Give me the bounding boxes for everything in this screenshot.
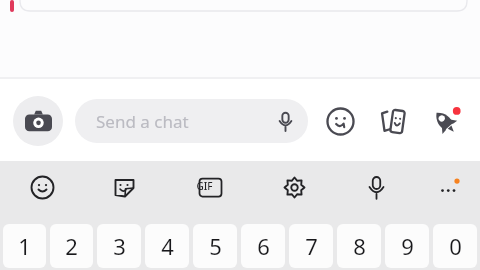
staticText: 2 [65, 231, 78, 261]
staticText: Send a chat [96, 110, 189, 133]
button[interactable]: 9 [385, 224, 429, 268]
button[interactable]: Cards [372, 100, 414, 142]
button[interactable]: 0 [433, 224, 477, 268]
button[interactable]: 8 [337, 224, 381, 268]
staticText: 0 [449, 231, 462, 261]
staticText: 7 [305, 231, 318, 261]
button[interactable]: 6 [241, 224, 285, 268]
staticText: 4 [161, 231, 174, 261]
staticText: GIF [196, 179, 213, 193]
staticText: 6 [257, 231, 270, 261]
button[interactable]: GIF [187, 164, 233, 210]
button[interactable]: Emoji [19, 164, 65, 210]
button[interactable]: Stickers [319, 100, 361, 142]
button[interactable]: 2 [50, 224, 93, 268]
staticText: 3 [113, 231, 126, 261]
button[interactable]: 5 [193, 224, 237, 268]
button[interactable]: Settings [271, 164, 317, 210]
button[interactable]: 4 [145, 224, 189, 268]
button[interactable]: Camera [13, 96, 63, 146]
staticText: 1 [18, 231, 31, 261]
button[interactable]: 3 [97, 224, 141, 268]
button[interactable]: Stickers [101, 164, 147, 210]
button[interactable]: Send a chat [75, 99, 308, 143]
button[interactable]: 1 [3, 224, 46, 268]
button[interactable]: Voice input [353, 164, 399, 210]
staticText: 9 [401, 231, 414, 261]
staticText: 5 [209, 231, 222, 261]
button[interactable]: Voice message [270, 106, 300, 136]
button[interactable]: Rocket [425, 100, 467, 142]
button[interactable]: More options [426, 164, 472, 210]
staticText: 8 [353, 231, 366, 261]
button[interactable]: 7 [289, 224, 333, 268]
